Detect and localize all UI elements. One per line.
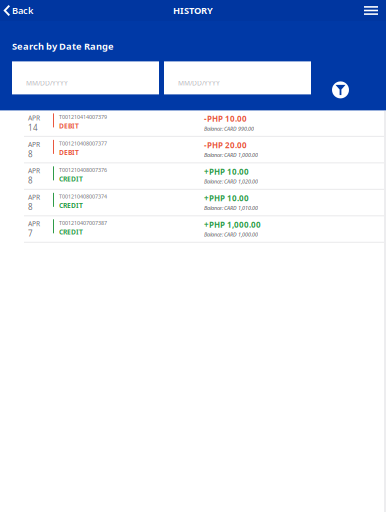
staticText: -PHP 20.00: [204, 140, 247, 150]
button[interactable]: MM/DD/YYYY: [164, 61, 311, 94]
staticText: 8: [28, 149, 33, 159]
staticText: DEBIT: [59, 148, 79, 157]
staticText: CREDIT: [59, 227, 83, 236]
staticText: MM/DD/YYYY: [26, 78, 68, 87]
staticText: DEBIT: [59, 121, 79, 130]
staticText: 7: [28, 228, 33, 239]
staticText: APR: [28, 140, 40, 149]
staticText: APR: [28, 166, 40, 175]
button[interactable]: Menu: [364, 3, 386, 18]
staticText: -PHP 10.00: [204, 113, 247, 124]
staticText: HISTORY: [173, 4, 213, 17]
staticText: +PHP 10.00: [204, 193, 249, 203]
staticText: MM/DD/YYYY: [178, 78, 220, 87]
staticText: Balance: CARD 1,000.00: [204, 231, 258, 238]
button[interactable]: APR: [0, 137, 386, 163]
button[interactable]: MM/DD/YYYY: [12, 61, 159, 94]
staticText: T001210408007374: [59, 193, 107, 200]
staticText: T001210408007376: [59, 166, 107, 173]
staticText: Balance: CARD 1,020.00: [204, 178, 258, 185]
staticText: APR: [28, 113, 40, 122]
staticText: T001210408007377: [59, 140, 107, 147]
staticText: T001210414007379: [59, 113, 107, 120]
button[interactable]: APR: [0, 216, 386, 243]
staticText: +PHP 10.00: [204, 166, 249, 177]
staticText: Balance: CARD 1,010.00: [204, 204, 258, 212]
staticText: APR: [28, 193, 40, 202]
button[interactable]: APR: [0, 163, 386, 190]
staticText: 8: [28, 202, 33, 212]
staticText: Balance: CARD 1,000.00: [204, 151, 258, 159]
button[interactable]: APR: [0, 190, 386, 216]
button[interactable]: APR: [0, 110, 386, 137]
button[interactable]: Back: [0, 1, 33, 20]
staticText: T001210407007387: [59, 219, 107, 226]
button[interactable]: Filter: [316, 61, 365, 94]
staticText: CREDIT: [59, 174, 83, 183]
staticText: 8: [28, 175, 33, 186]
staticText: CREDIT: [59, 201, 83, 210]
staticText: +PHP 1,000.00: [204, 219, 261, 230]
staticText: Balance: CARD 990.00: [204, 125, 254, 132]
staticText: APR: [28, 219, 40, 228]
staticText: Search by Date Range: [12, 40, 114, 52]
staticText: 14: [28, 122, 38, 133]
staticText: Back: [12, 4, 33, 17]
